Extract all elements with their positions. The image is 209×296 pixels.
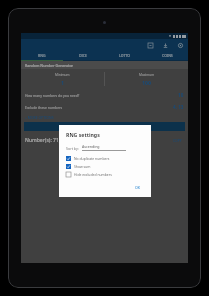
staticText: Sort by: bbox=[66, 146, 79, 151]
staticText: Exclude these numbers bbox=[25, 105, 63, 110]
staticText: How many numbers do you need? bbox=[25, 93, 80, 98]
button[interactable]: COPY bbox=[171, 136, 184, 145]
button[interactable]: COINS bbox=[146, 50, 188, 60]
button[interactable]: OK bbox=[132, 184, 144, 191]
button[interactable]: Exclude these numbers bbox=[21, 101, 188, 113]
staticText: + MORE OPTIONS bbox=[25, 115, 54, 120]
staticText: Number(s): 71, 3, 44, 9 bbox=[25, 137, 79, 144]
staticText: Show sum bbox=[74, 164, 91, 169]
staticText: Random Number Generator bbox=[25, 63, 74, 68]
button[interactable]: Show sum bbox=[66, 164, 144, 169]
button[interactable]: Minimum bbox=[21, 69, 104, 89]
button[interactable]: Save bbox=[161, 41, 169, 49]
staticText: Minimum bbox=[55, 73, 70, 77]
staticText: 100 bbox=[142, 79, 151, 86]
staticText: RNG settings bbox=[66, 131, 100, 138]
staticText: Hide excluded numbers bbox=[74, 172, 112, 177]
staticText: Ascending bbox=[82, 144, 100, 149]
button[interactable]: No duplicate numbers bbox=[66, 156, 144, 161]
staticText: 4, 13 bbox=[173, 104, 184, 110]
staticText: 1 bbox=[61, 79, 64, 86]
button[interactable]: GENERATE bbox=[24, 122, 185, 131]
staticText: 10 bbox=[178, 92, 184, 98]
staticText: No duplicate numbers bbox=[74, 156, 110, 161]
button[interactable]: Hide excluded numbers bbox=[66, 172, 144, 177]
button[interactable]: Ascending bbox=[82, 144, 126, 151]
staticText: OK bbox=[135, 185, 141, 190]
staticText: COPY bbox=[173, 138, 182, 143]
button[interactable]: History bbox=[146, 41, 154, 49]
staticText: GENERATE bbox=[96, 124, 113, 129]
button[interactable]: RNG bbox=[21, 50, 62, 60]
button[interactable]: How many numbers do you need? bbox=[21, 89, 188, 101]
button[interactable]: Settings bbox=[176, 41, 184, 49]
staticText: DICE bbox=[79, 53, 87, 58]
staticText: Maximum bbox=[139, 73, 155, 77]
staticText: LOTTO bbox=[119, 53, 131, 58]
button[interactable]: Maximum bbox=[105, 69, 188, 89]
button[interactable]: DICE bbox=[62, 50, 104, 60]
staticText: RNG bbox=[38, 53, 46, 58]
button[interactable]: LOTTO bbox=[104, 50, 146, 60]
staticText: COINS bbox=[162, 53, 173, 58]
button[interactable]: + MORE OPTIONS bbox=[21, 113, 188, 122]
